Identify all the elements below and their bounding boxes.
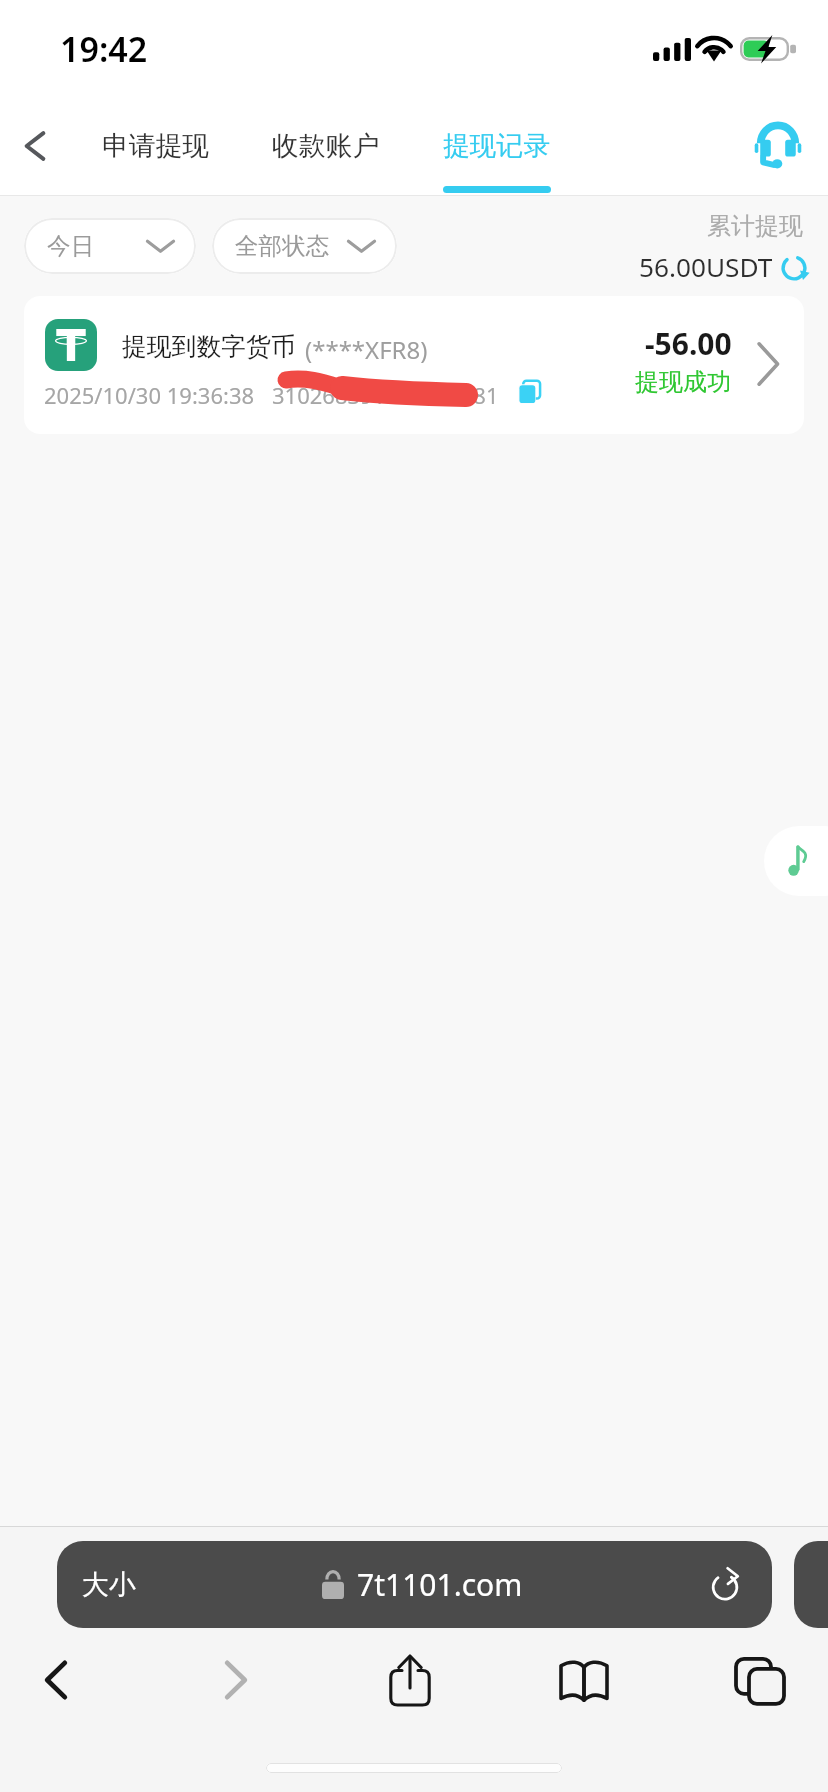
button[interactable]: 提现记录 [443, 129, 551, 193]
staticText: -56.00 [645, 323, 732, 364]
button[interactable]: Copy [514, 376, 546, 408]
button[interactable]: 申请提现 [102, 129, 210, 163]
button[interactable]: Bookmarks [532, 1636, 636, 1724]
button[interactable]: 提现到数字货币 [24, 296, 804, 434]
button[interactable]: Music [764, 826, 828, 896]
staticText: 56.00USDT [639, 249, 773, 285]
staticText: 提现成功 [635, 367, 731, 397]
staticText: 提现记录 [443, 129, 551, 163]
button[interactable]: 大小 [57, 1541, 772, 1628]
button[interactable]: Next tab [794, 1541, 828, 1628]
staticText: 7t1101.com [357, 1564, 523, 1605]
staticText: 19:42 [60, 26, 148, 72]
staticText: 提现到数字货币 [122, 331, 296, 362]
staticText: 310268391726384581 [272, 380, 499, 410]
button[interactable]: Back [0, 102, 70, 190]
staticText: 2025/10/30 19:36:38 [44, 380, 255, 410]
staticText: 申请提现 [102, 129, 210, 163]
button[interactable]: Forward [184, 1636, 288, 1724]
button[interactable]: Customer service [732, 102, 824, 190]
staticText: 大小 [82, 1568, 136, 1602]
button[interactable]: Refresh [776, 250, 812, 286]
button[interactable]: Tabs [708, 1636, 812, 1724]
button[interactable]: 收款账户 [272, 129, 380, 163]
staticText: 全部状态 [235, 231, 330, 261]
button[interactable]: Back [4, 1636, 108, 1724]
button[interactable]: Share [358, 1636, 462, 1724]
staticText: (****XFR8) [305, 333, 428, 366]
staticText: 今日 [47, 231, 95, 261]
staticText: 收款账户 [272, 129, 380, 163]
button[interactable]: 全部状态 [212, 218, 397, 274]
staticText: 累计提现 [707, 211, 803, 241]
button[interactable]: 今日 [24, 218, 196, 274]
